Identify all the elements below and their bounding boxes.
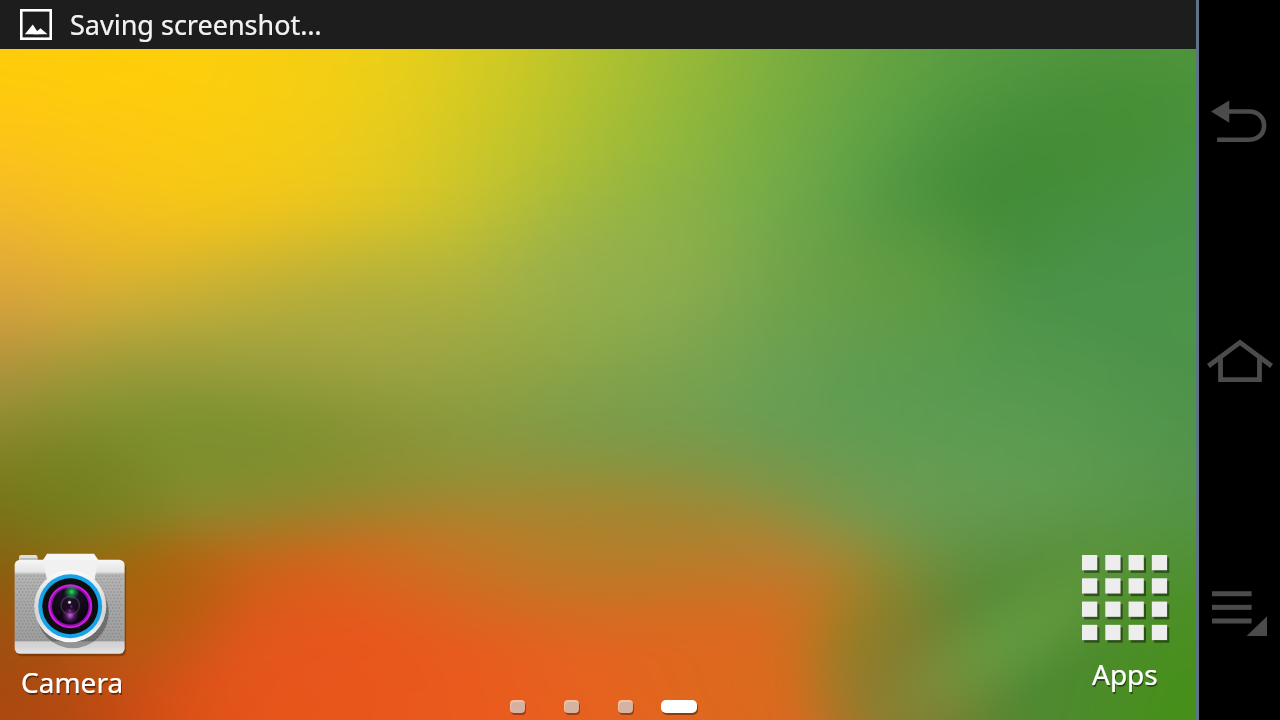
staticText: Camera — [21, 663, 124, 701]
button[interactable]: Screenshot — [0, 0, 1196, 49]
button[interactable]: Menu — [1199, 566, 1280, 647]
staticText: Apps — [1092, 655, 1158, 693]
button[interactable]: Home — [1199, 320, 1280, 401]
staticText: Camera — [22, 665, 125, 703]
button[interactable]: Back — [1199, 80, 1280, 161]
button[interactable]: Camera — [6, 550, 134, 700]
staticText: Apps — [1093, 657, 1159, 695]
button[interactable]: Apps — [1074, 548, 1178, 700]
other: Screenshot — [20, 9, 52, 40]
staticText: Saving screenshot… — [70, 6, 322, 43]
